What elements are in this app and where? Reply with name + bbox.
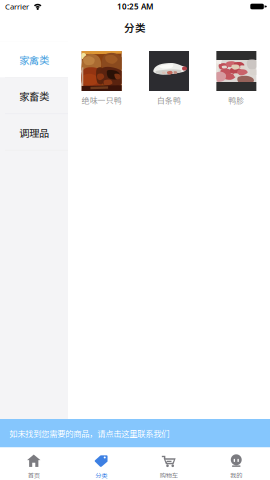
- staticText: 调理品: [19, 125, 49, 140]
- staticText: 白条鸭: [157, 94, 181, 106]
- staticText: 绝味一只鸭: [82, 94, 122, 106]
- staticText: 家畜类: [19, 89, 49, 104]
- button[interactable]: 分类: [67, 447, 135, 480]
- button[interactable]: 购物车: [135, 447, 202, 480]
- staticText: 分类: [124, 20, 146, 35]
- staticText: 首页: [28, 471, 40, 480]
- staticText: 分类: [95, 471, 107, 480]
- staticText: 购物车: [160, 471, 178, 480]
- button[interactable]: 我的: [202, 447, 270, 480]
- button[interactable]: 如未找到您需要的商品，请点击这里联系我们: [0, 419, 270, 447]
- button[interactable]: 白条鸭: [135, 51, 203, 106]
- button[interactable]: 家畜类: [0, 78, 68, 114]
- staticText: 鸭胗: [228, 94, 244, 106]
- button[interactable]: 调理品: [0, 114, 68, 151]
- staticText: 家禽类: [19, 52, 49, 67]
- staticText: 我的: [230, 471, 242, 480]
- button[interactable]: 首页: [0, 447, 67, 480]
- button[interactable]: 家禽类: [0, 42, 68, 78]
- staticText: 如未找到您需要的商品，请点击这里联系我们: [9, 427, 169, 439]
- staticText: Carrier: [5, 1, 29, 12]
- staticText: 10:25 AM: [117, 1, 153, 12]
- button[interactable]: 绝味一只鸭: [68, 51, 135, 106]
- button[interactable]: 鸭胗: [203, 51, 270, 106]
